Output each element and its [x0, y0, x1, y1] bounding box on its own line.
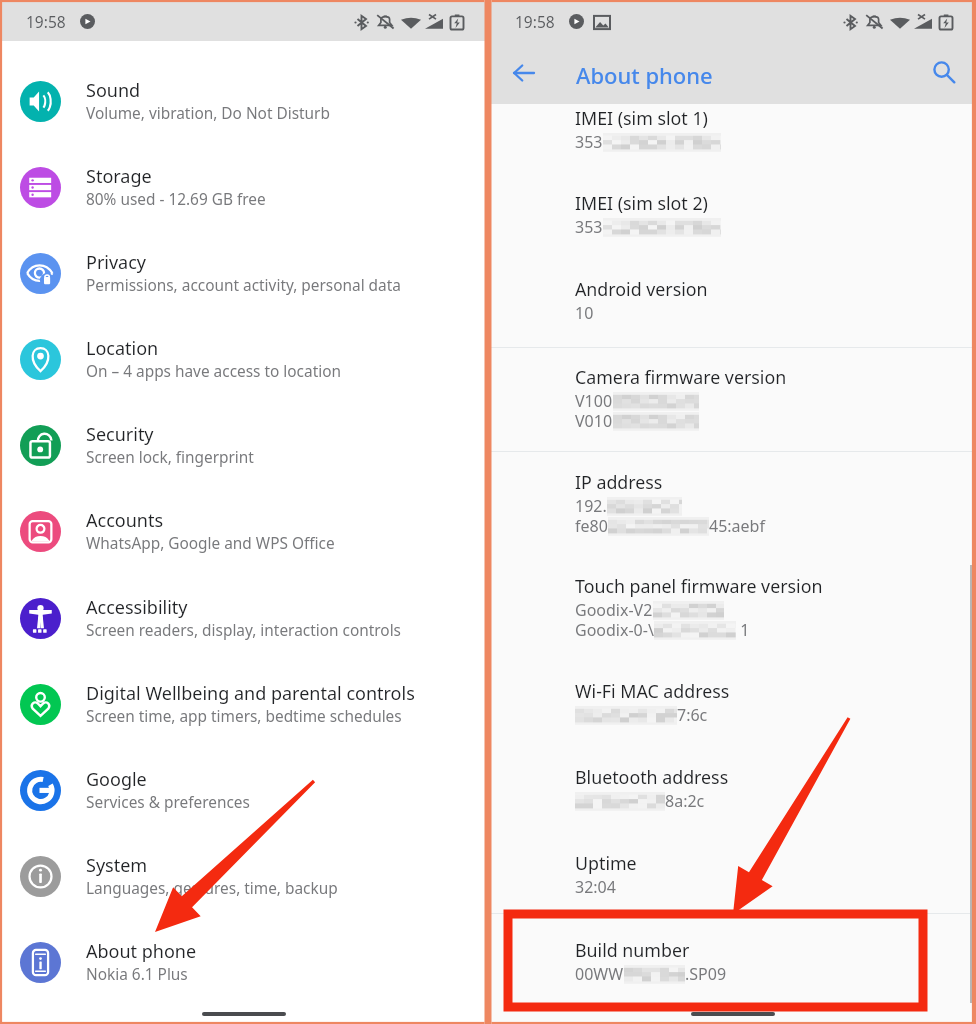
button[interactable]: IMEI (sim slot 2) [491, 174, 974, 236]
button[interactable]: Location [2, 318, 485, 400]
staticText: Wi-Fi MAC address [575, 679, 730, 703]
button[interactable]: Camera firmware version [491, 348, 974, 429]
staticText: Digital Wellbeing and parental controls [86, 681, 415, 706]
staticText: Languages, gestures, time, backup [86, 878, 338, 899]
staticText: Accounts [86, 508, 164, 533]
button[interactable]: Digital Wellbeing and parental controls [2, 663, 485, 745]
staticText: Volume, vibration, Do Not Disturb [86, 103, 330, 124]
staticText: Accessibility [86, 595, 188, 620]
staticText: 00WW [575, 963, 624, 985]
staticText: Permissions, account activity, personal … [86, 275, 401, 296]
button[interactable]: Sound [2, 60, 485, 142]
staticText: Privacy [86, 250, 147, 275]
staticText: 7:6c [677, 704, 708, 726]
staticText: Build number [575, 938, 690, 962]
staticText: 80% used - 12.69 GB free [86, 189, 266, 210]
staticText: Goodix-V2 [575, 599, 653, 621]
staticText: 45:aebf [709, 515, 765, 537]
staticText: Bluetooth address [575, 765, 729, 789]
button[interactable]: Build number [491, 921, 974, 983]
staticText: V010 [575, 410, 613, 432]
button[interactable]: Back [502, 51, 546, 95]
staticText: Screen lock, fingerprint [86, 447, 254, 468]
button[interactable]: Android version [491, 260, 974, 322]
staticText: 353 [575, 216, 603, 238]
staticText: Storage [86, 164, 152, 189]
staticText: About phone [576, 60, 713, 90]
button[interactable]: Touch panel firmware version [491, 557, 974, 638]
staticText: Uptime [575, 851, 637, 875]
staticText: System [86, 853, 148, 878]
staticText: Security [86, 422, 154, 447]
staticText: .SP09 [685, 963, 727, 985]
staticText: 8a:2c [665, 790, 705, 812]
button[interactable]: Privacy [2, 232, 485, 314]
staticText: Camera firmware version [575, 365, 787, 389]
staticText: V100 [575, 390, 613, 412]
button[interactable]: Uptime [491, 834, 974, 896]
staticText: Nokia 6.1 Plus [86, 964, 188, 985]
staticText: 32:04 [575, 876, 616, 898]
staticText: IMEI (sim slot 1) [575, 106, 708, 130]
button[interactable]: Google [2, 749, 485, 831]
staticText: 192. [575, 495, 607, 517]
staticText: fe80 [575, 515, 608, 537]
button[interactable]: IP address [491, 453, 974, 534]
staticText: Services & preferences [86, 792, 250, 813]
staticText: About phone [86, 939, 197, 964]
button[interactable]: Accessibility [2, 577, 485, 659]
button[interactable]: About phone [2, 921, 485, 1003]
button[interactable]: Wi-Fi MAC address [491, 662, 974, 724]
staticText: Sound [86, 78, 141, 103]
staticText: On – 4 apps have access to location [86, 361, 341, 382]
staticText: Goodix-0-\ [575, 619, 654, 641]
staticText: Location [86, 336, 159, 361]
button[interactable]: System [2, 835, 485, 917]
staticText: 19:58 [26, 11, 66, 32]
staticText: Touch panel firmware version [575, 574, 823, 598]
staticText: Google [86, 767, 147, 792]
staticText: 19:58 [515, 11, 555, 32]
staticText: IP address [575, 470, 663, 494]
button[interactable]: Search [922, 50, 966, 94]
button[interactable]: Accounts [2, 490, 485, 572]
button[interactable]: Storage [2, 146, 485, 228]
staticText: Android version [575, 277, 708, 301]
button[interactable]: Security [2, 404, 485, 486]
staticText: 353 [575, 131, 603, 153]
staticText: Screen readers, display, interaction con… [86, 620, 401, 641]
staticText: IMEI (sim slot 2) [575, 191, 708, 215]
staticText: Screen time, app timers, bedtime schedul… [86, 706, 402, 727]
button[interactable]: Bluetooth address [491, 748, 974, 810]
staticText: 10 [575, 302, 594, 324]
staticText: WhatsApp, Google and WPS Office [86, 533, 335, 554]
button[interactable]: IMEI (sim slot 1) [491, 89, 974, 151]
staticText: 1 [736, 619, 750, 641]
